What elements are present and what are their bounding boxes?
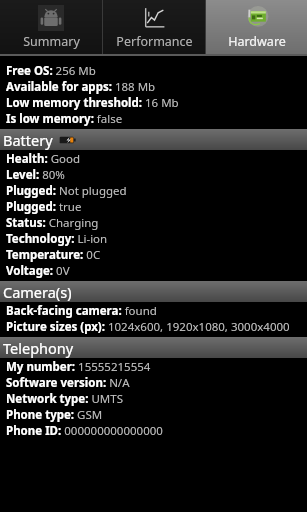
- button[interactable]: Temperature: 0C: [6, 247, 303, 263]
- button[interactable]: Picture sizes (px): 1024x600, 1920x1080,…: [6, 319, 303, 335]
- staticText: Low memory threshold: 16 Mb: [6, 95, 179, 111]
- staticText: Health: Good: [6, 151, 81, 167]
- staticText: Level: 80%: [6, 167, 65, 183]
- staticText: Telephony: [3, 338, 74, 358]
- button[interactable]: Technology: Li-ion: [6, 231, 303, 247]
- button[interactable]: Phone ID: 000000000000000: [6, 423, 303, 439]
- button[interactable]: Level: 80%: [6, 167, 303, 183]
- button[interactable]: Hardware: [206, 0, 307, 54]
- button[interactable]: Plugged: true: [6, 199, 303, 215]
- staticText: Technology: Li-ion: [6, 231, 108, 247]
- staticText: Camera(s): [3, 282, 72, 302]
- button[interactable]: Low memory threshold: 16 Mb: [6, 95, 303, 111]
- button[interactable]: Free OS: 256 Mb: [6, 63, 303, 79]
- button[interactable]: Is low memory: false: [6, 111, 303, 127]
- staticText: My number: 15555215554: [6, 359, 151, 375]
- staticText: Software version: N/A: [6, 375, 130, 391]
- button[interactable]: My number: 15555215554: [6, 359, 303, 375]
- staticText: Temperature: 0C: [6, 247, 101, 263]
- staticText: Plugged: Not plugged: [6, 183, 127, 199]
- staticText: Summary: [23, 33, 80, 50]
- staticText: Hardware: [228, 33, 286, 50]
- staticText: Voltage: 0V: [6, 263, 70, 279]
- button[interactable]: Status: Charging: [6, 215, 303, 231]
- staticText: Phone ID: 000000000000000: [6, 423, 163, 439]
- button[interactable]: Summary: [0, 0, 102, 54]
- staticText: Battery: [3, 130, 53, 150]
- staticText: Network type: UMTS: [6, 391, 123, 407]
- button[interactable]: Phone type: GSM: [6, 407, 303, 423]
- staticText: Plugged: true: [6, 199, 82, 215]
- button[interactable]: Health: Good: [6, 151, 303, 167]
- staticText: Back-facing camera: found: [6, 303, 157, 319]
- staticText: Status: Charging: [6, 215, 99, 231]
- button[interactable]: Plugged: Not plugged: [6, 183, 303, 199]
- button[interactable]: Available for apps: 188 Mb: [6, 79, 303, 95]
- button[interactable]: Voltage: 0V: [6, 263, 303, 279]
- button[interactable]: Network type: UMTS: [6, 391, 303, 407]
- staticText: Available for apps: 188 Mb: [6, 79, 156, 95]
- button[interactable]: Back-facing camera: found: [6, 303, 303, 319]
- staticText: Picture sizes (px): 1024x600, 1920x1080,…: [6, 319, 290, 335]
- staticText: Phone type: GSM: [6, 407, 103, 423]
- button[interactable]: Performance: [103, 0, 205, 54]
- staticText: Free OS: 256 Mb: [6, 63, 96, 79]
- button[interactable]: Software version: N/A: [6, 375, 303, 391]
- staticText: Performance: [116, 33, 193, 50]
- staticText: Is low memory: false: [6, 111, 123, 127]
